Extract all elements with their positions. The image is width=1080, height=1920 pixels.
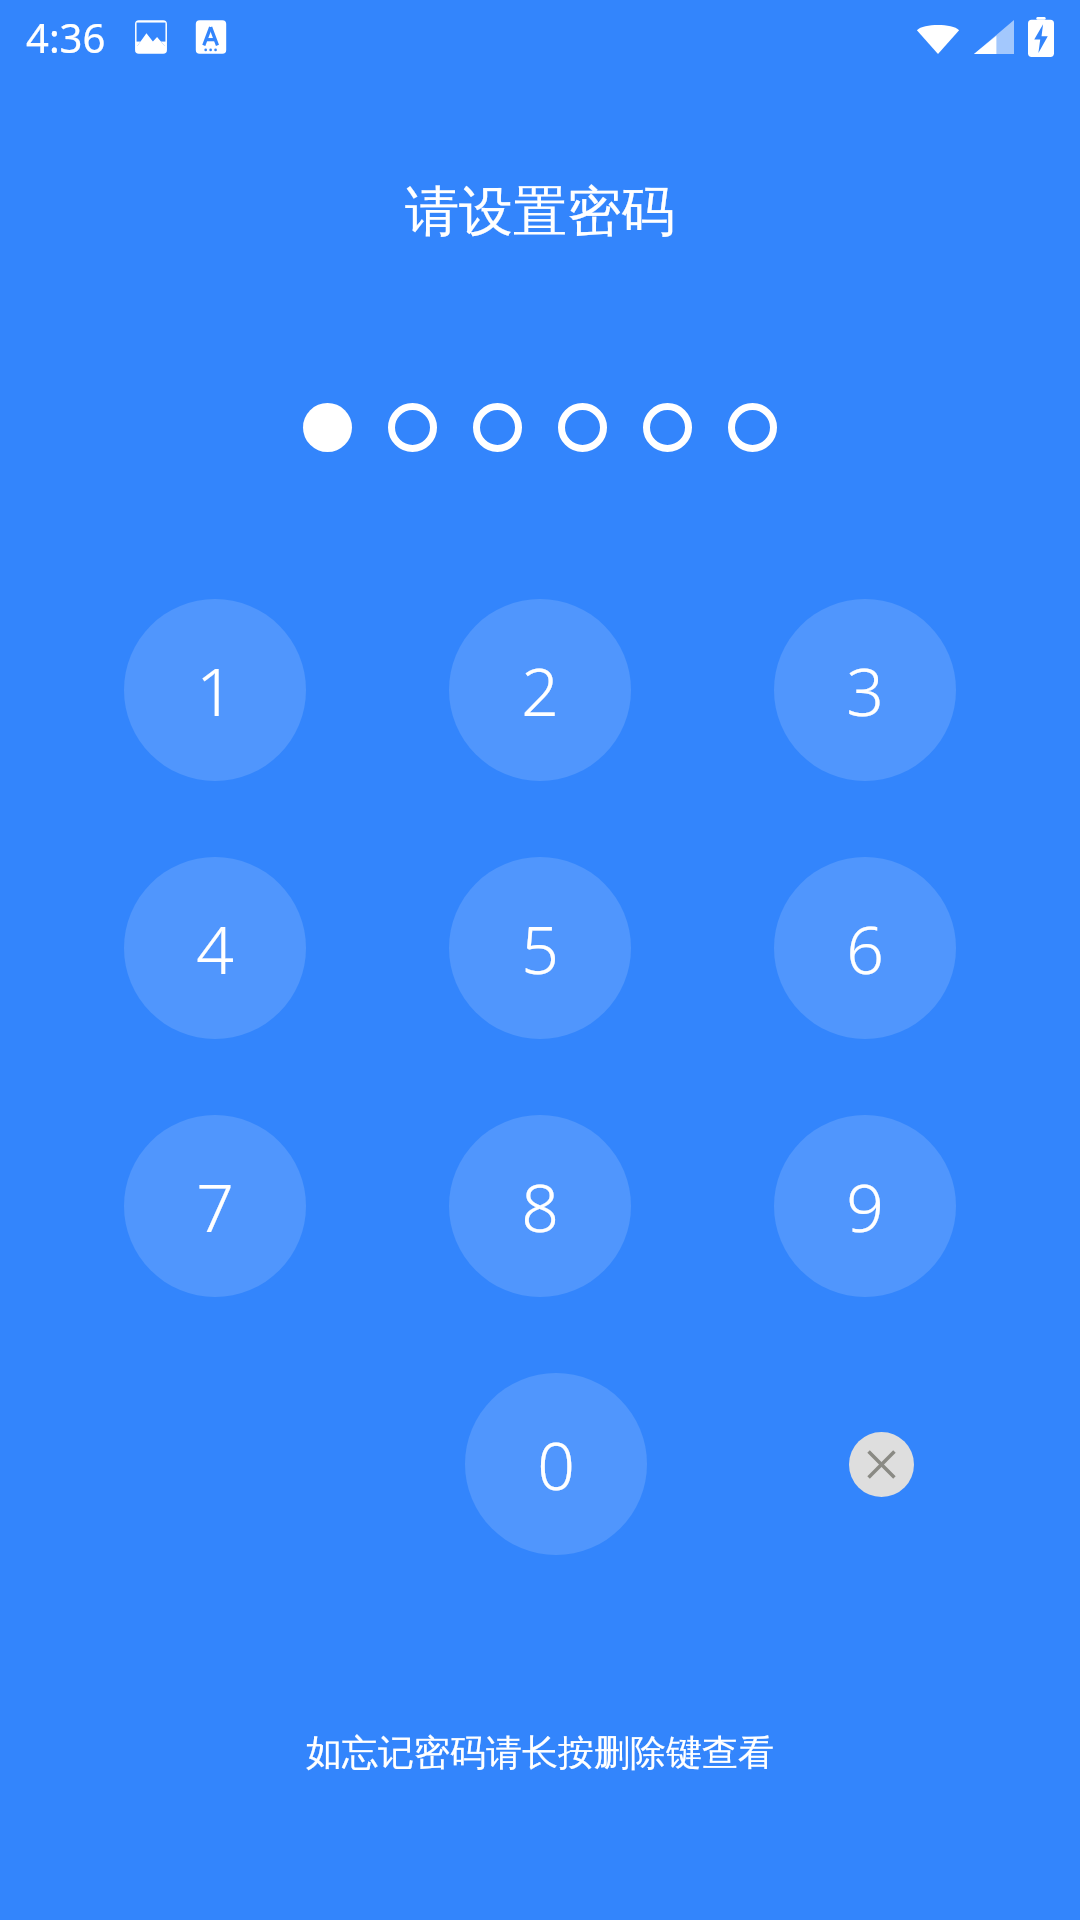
button[interactable]: Delete <box>849 1432 914 1497</box>
button[interactable]: 8 <box>449 1115 631 1297</box>
button[interactable]: 4 <box>124 857 306 1039</box>
button[interactable]: 6 <box>774 857 956 1039</box>
button[interactable]: 3 <box>774 599 956 781</box>
staticText: 0 <box>537 1419 575 1509</box>
staticText: 如忘记密码请长按删除键查看 <box>306 1730 774 1775</box>
button[interactable]: 7 <box>124 1115 306 1297</box>
staticText: 7 <box>196 1161 234 1251</box>
button[interactable]: 9 <box>774 1115 956 1297</box>
button[interactable]: 0 <box>465 1373 647 1555</box>
staticText: 6 <box>846 903 884 993</box>
staticText: 5 <box>521 903 559 993</box>
staticText: 4:36 <box>26 10 106 64</box>
staticText: 1 <box>196 645 234 735</box>
staticText: 请设置密码 <box>405 178 675 246</box>
button[interactable]: 2 <box>449 599 631 781</box>
staticText: 2 <box>521 645 559 735</box>
button[interactable]: 5 <box>449 857 631 1039</box>
button[interactable]: 1 <box>124 599 306 781</box>
staticText: 9 <box>846 1161 884 1251</box>
staticText: 3 <box>846 645 884 735</box>
staticText: 4 <box>196 903 234 993</box>
staticText: 8 <box>521 1161 559 1251</box>
